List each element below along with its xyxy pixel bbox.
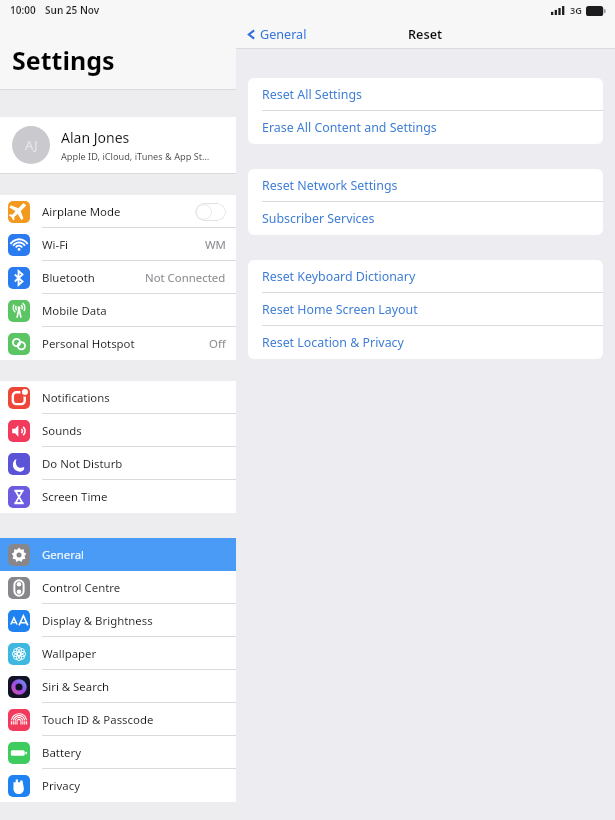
staticText: Erase All Content and Settings [262, 119, 437, 136]
staticText: General [260, 26, 307, 43]
button[interactable]: AJ [0, 117, 236, 173]
staticText: Subscriber Services [262, 210, 375, 227]
button[interactable]: Airplane Mode off [195, 203, 226, 221]
button[interactable]: Subscriber Services [248, 202, 603, 235]
button[interactable]: Screen Time [0, 480, 236, 513]
staticText: Siri & Search [42, 679, 110, 695]
staticText: Personal Hotspot [42, 336, 135, 352]
button[interactable]: Display & Brightness [0, 604, 236, 637]
staticText: Settings [12, 43, 115, 77]
staticText: Control Centre [42, 580, 121, 596]
staticText: Display & Brightness [42, 613, 153, 629]
staticText: Reset Keyboard Dictionary [262, 268, 416, 285]
staticText: Reset All Settings [262, 86, 362, 103]
staticText: Bluetooth [42, 270, 95, 286]
staticText: Reset Network Settings [262, 177, 398, 194]
button[interactable]: Siri & Search [0, 670, 236, 703]
staticText: Reset [408, 26, 443, 43]
staticText: Reset Location & Privacy [262, 334, 404, 351]
button[interactable]: Battery [0, 736, 236, 769]
staticText: 10:00 [10, 3, 36, 17]
button[interactable]: Bluetooth [0, 261, 236, 294]
button[interactable]: Reset Network Settings [248, 169, 603, 202]
staticText: Not Connected [145, 270, 226, 286]
button[interactable]: Control Centre [0, 571, 236, 604]
staticText: Off [209, 336, 226, 352]
staticText: Sun 25 Nov [45, 3, 100, 17]
staticText: AJ [25, 136, 38, 154]
staticText: Apple ID, iCloud, iTunes & App St… [61, 150, 210, 163]
staticText: Reset Home Screen Layout [262, 301, 418, 318]
staticText: Wi-Fi [42, 237, 69, 253]
staticText: 3G [570, 4, 582, 17]
button[interactable]: General [236, 22, 313, 47]
button[interactable]: Privacy [0, 769, 236, 802]
staticText: Do Not Disturb [42, 456, 123, 472]
button[interactable]: Reset Keyboard Dictionary [248, 260, 603, 293]
staticText: General [42, 547, 84, 563]
staticText: Sounds [42, 423, 82, 439]
button[interactable]: Touch ID & Passcode [0, 703, 236, 736]
staticText: Notifications [42, 390, 110, 406]
button[interactable]: Airplane Mode [0, 195, 236, 228]
button[interactable]: Notifications [0, 381, 236, 414]
staticText: Battery [42, 745, 81, 761]
button[interactable]: Sounds [0, 414, 236, 447]
button[interactable]: Reset Location & Privacy [248, 326, 603, 359]
staticText: WM [205, 237, 226, 253]
staticText: Alan Jones [61, 128, 130, 147]
staticText: Privacy [42, 778, 80, 794]
button[interactable]: Do Not Disturb [0, 447, 236, 480]
button[interactable]: Erase All Content and Settings [248, 111, 603, 144]
button[interactable]: Wi-Fi [0, 228, 236, 261]
button[interactable]: Reset Home Screen Layout [248, 293, 603, 326]
staticText: Airplane Mode [42, 204, 121, 220]
button[interactable]: General [0, 538, 236, 571]
button[interactable]: Mobile Data [0, 294, 236, 327]
button[interactable]: Reset All Settings [248, 78, 603, 111]
button[interactable]: Personal Hotspot [0, 327, 236, 360]
button[interactable]: Wallpaper [0, 637, 236, 670]
staticText: Wallpaper [42, 646, 97, 662]
staticText: Screen Time [42, 489, 108, 505]
staticText: Mobile Data [42, 303, 107, 319]
staticText: Touch ID & Passcode [42, 712, 154, 728]
